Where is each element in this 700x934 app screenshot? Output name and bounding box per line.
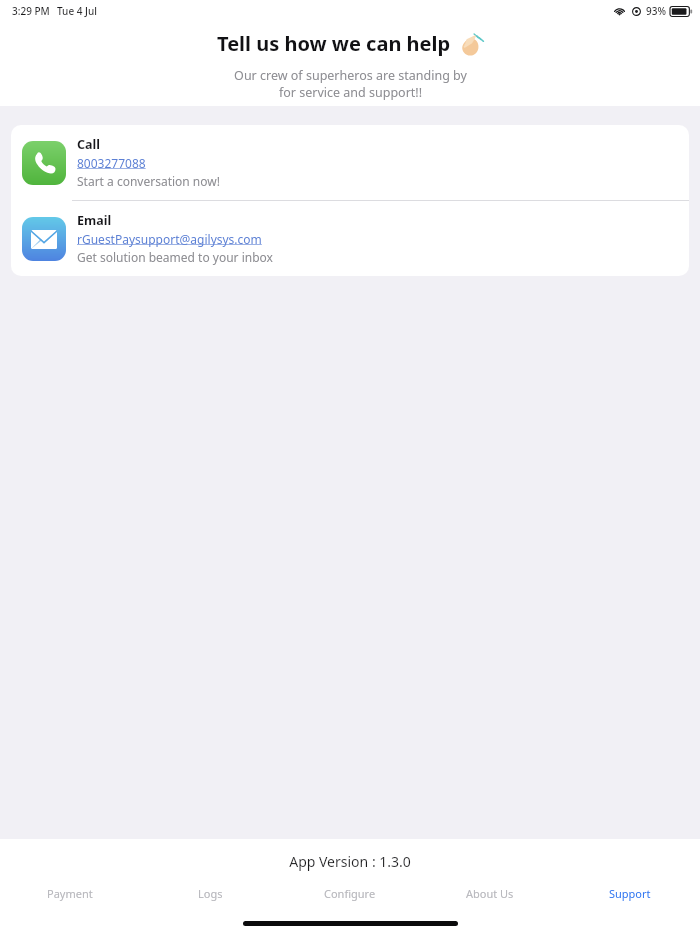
- button[interactable]: Configure: [280, 886, 420, 901]
- staticText: Payment: [47, 886, 93, 901]
- staticText: rGuestPaysupport@agilysys.com: [77, 231, 262, 247]
- staticText: App Version : 1.3.0: [0, 852, 700, 871]
- button[interactable]: Logs: [140, 886, 280, 901]
- staticText: Tue 4 Jul: [57, 4, 97, 18]
- staticText: Configure: [324, 886, 376, 901]
- button[interactable]: Email: [11, 201, 689, 276]
- button[interactable]: Call: [11, 125, 689, 200]
- staticText: Start a conversation now!: [77, 173, 220, 189]
- staticText: Get solution beamed to your inbox: [77, 249, 273, 265]
- staticText: Our crew of superheros are standing by f…: [234, 67, 467, 101]
- staticText: Email: [77, 212, 112, 229]
- staticText: Tell us how we can help: [217, 30, 451, 57]
- staticText: About Us: [466, 886, 514, 901]
- button[interactable]: Payment: [0, 886, 140, 901]
- other: Email: [22, 217, 66, 261]
- button[interactable]: About Us: [420, 886, 560, 901]
- staticText: Call: [77, 136, 100, 153]
- staticText: Support: [609, 886, 651, 901]
- staticText: 93%: [646, 4, 666, 18]
- staticText: 3:29 PM: [12, 4, 50, 18]
- other: Call: [22, 141, 66, 185]
- button[interactable]: Support: [560, 886, 700, 901]
- staticText: 8003277088: [77, 155, 146, 171]
- staticText: Logs: [198, 886, 223, 901]
